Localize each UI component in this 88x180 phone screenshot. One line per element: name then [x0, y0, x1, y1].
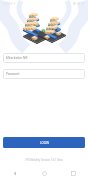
staticText: Mitarbeiter NR [6, 56, 28, 60]
button[interactable]: Recents [59, 167, 88, 180]
staticText: 9:30 [3, 2, 10, 6]
button[interactable]: Back [0, 167, 30, 180]
staticText: LOGIN [40, 141, 49, 145]
button[interactable]: Passwort [3, 69, 85, 79]
button[interactable]: LOGIN [3, 137, 85, 148]
staticText: Passwort [6, 72, 20, 76]
button[interactable]: Home [30, 167, 59, 180]
staticText: FFS Mobility Version 1.0.1 Beta [25, 158, 63, 162]
button[interactable]: Mitarbeiter NR [3, 53, 85, 63]
